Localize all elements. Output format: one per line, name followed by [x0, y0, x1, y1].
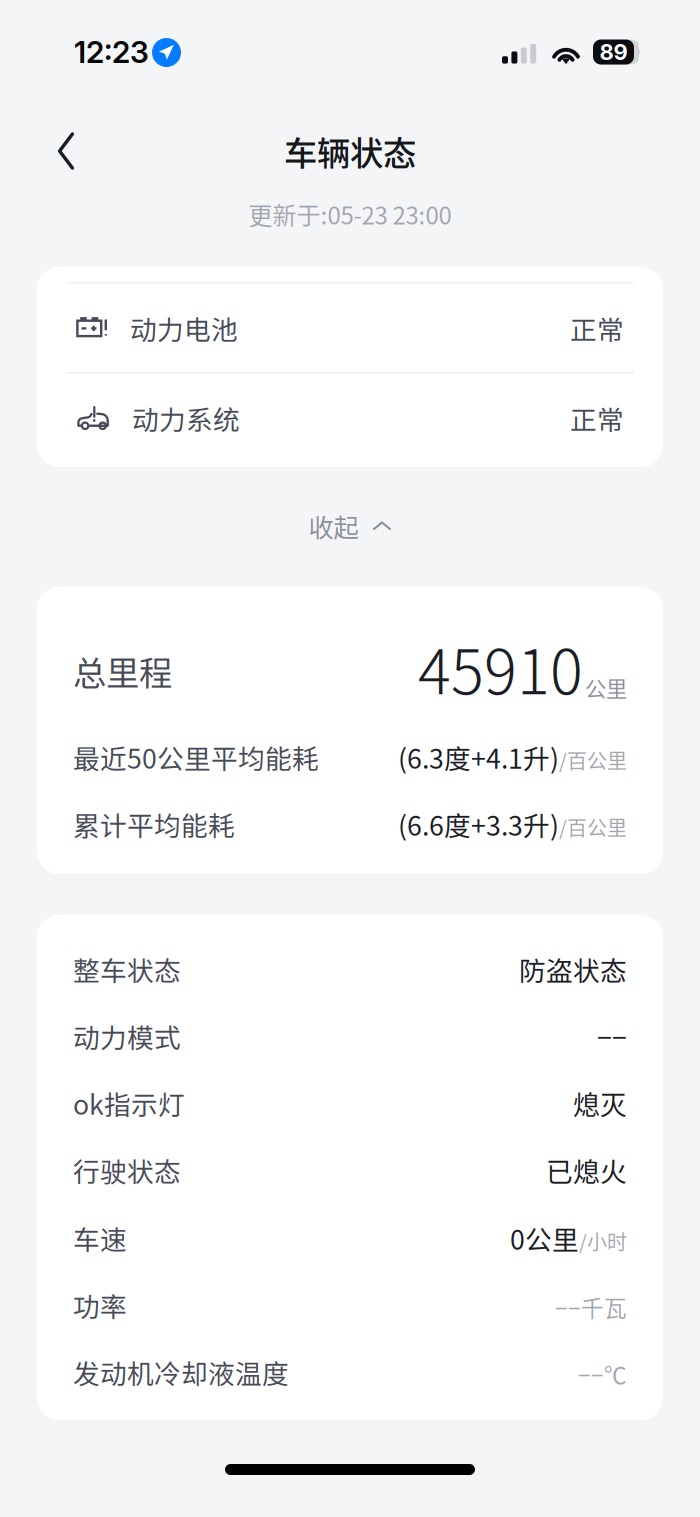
staticText: 发动机冷却液温度 — [73, 1353, 289, 1391]
staticText: 更新于:05-23 23:00 — [248, 197, 451, 231]
staticText: 动力电池 — [130, 309, 238, 347]
staticText: −− — [597, 1017, 627, 1055]
button[interactable]: 收起 — [250, 498, 450, 554]
staticText: 功率 — [73, 1286, 127, 1324]
staticText: 累计平均能耗 — [73, 805, 235, 843]
staticText: 45910 — [418, 623, 583, 712]
staticText: (6.3度+4.1升) — [398, 738, 559, 776]
staticText: /百公里 — [559, 745, 627, 774]
staticText: 12:23 — [74, 34, 149, 70]
staticText: 总里程 — [73, 647, 172, 695]
staticText: −−℃ — [578, 1357, 627, 1390]
staticText: 正常 — [570, 399, 624, 437]
staticText: 89 — [599, 39, 627, 65]
staticText: ok指示灯 — [73, 1084, 185, 1122]
staticText: 正常 — [570, 309, 624, 347]
staticText: 最近50公里平均能耗 — [73, 738, 319, 776]
button[interactable]: 动力系统 — [37, 373, 663, 463]
button[interactable]: 动力电池 — [37, 283, 663, 373]
staticText: /小时 — [579, 1226, 627, 1255]
staticText: −−千瓦 — [555, 1290, 627, 1323]
button[interactable]: Back — [34, 118, 100, 184]
staticText: 熄灭 — [573, 1084, 627, 1122]
staticText: (6.6度+3.3升) — [398, 805, 559, 843]
staticText: 行驶状态 — [73, 1151, 181, 1189]
staticText: 收起 — [308, 508, 358, 544]
staticText: /百公里 — [559, 812, 627, 841]
staticText: 公里 — [585, 672, 627, 703]
staticText: 车辆状态 — [284, 127, 416, 175]
staticText: 动力模式 — [73, 1017, 181, 1055]
staticText: 0公里 — [510, 1219, 579, 1257]
staticText: 动力系统 — [132, 399, 240, 437]
staticText: 防盗状态 — [519, 950, 627, 988]
staticText: 整车状态 — [73, 950, 181, 988]
staticText: 车速 — [73, 1219, 127, 1257]
staticText: 已熄火 — [546, 1151, 627, 1189]
